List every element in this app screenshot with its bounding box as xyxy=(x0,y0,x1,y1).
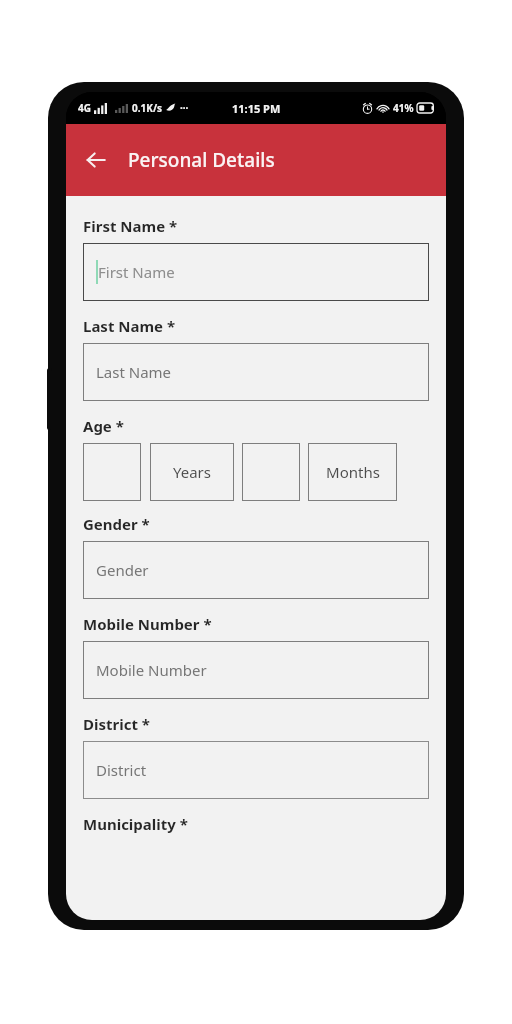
staticText: Last Name xyxy=(96,362,172,382)
staticText: Years xyxy=(173,462,211,482)
button[interactable]: Years value xyxy=(83,443,141,501)
staticText: Personal Details xyxy=(128,147,275,173)
staticText: Gender * xyxy=(83,514,150,534)
staticText: Mobile Number xyxy=(96,660,207,680)
staticText: District * xyxy=(83,714,150,734)
button[interactable]: Years xyxy=(150,443,234,501)
button[interactable]: Back xyxy=(74,138,118,182)
button[interactable]: District xyxy=(83,741,429,799)
other: Side key xyxy=(47,368,52,430)
staticText: First Name * xyxy=(83,216,178,236)
button[interactable]: Mobile Number xyxy=(83,641,429,699)
staticText: 11:15 PM xyxy=(232,101,281,116)
button[interactable]: Months value xyxy=(242,443,300,501)
staticText: ··· xyxy=(180,101,189,115)
button[interactable]: Months xyxy=(308,443,397,501)
staticText: 41% xyxy=(393,101,414,115)
staticText: 4G xyxy=(78,101,91,115)
staticText: 0.1K/s xyxy=(132,101,163,115)
staticText: Last Name * xyxy=(83,316,176,336)
staticText: Municipality * xyxy=(83,814,188,834)
staticText: First Name xyxy=(98,262,175,282)
staticText: District xyxy=(96,760,147,780)
button[interactable]: Gender xyxy=(83,541,429,599)
button[interactable]: First Name xyxy=(83,243,429,301)
staticText: Gender xyxy=(96,560,149,580)
button[interactable]: Last Name xyxy=(83,343,429,401)
staticText: Mobile Number * xyxy=(83,614,212,634)
staticText: Months xyxy=(326,462,380,482)
staticText: Age * xyxy=(83,416,124,436)
